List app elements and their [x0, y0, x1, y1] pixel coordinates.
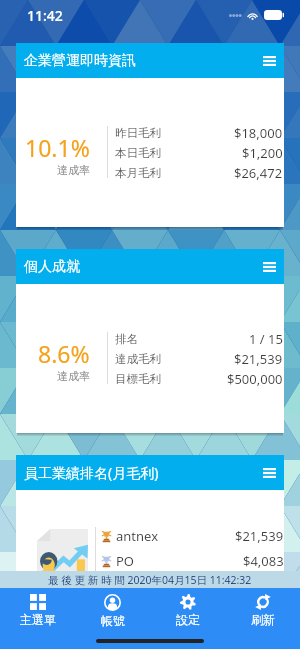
staticText: $1,200	[242, 144, 283, 162]
staticText: $4,083	[243, 552, 284, 570]
other: Settings	[180, 594, 196, 610]
other: Account	[104, 594, 121, 611]
staticText: 昨日毛利	[115, 126, 161, 140]
staticText: 設定	[176, 612, 200, 627]
button[interactable]: Refresh	[225, 588, 300, 632]
button[interactable]: Main menu	[0, 588, 75, 632]
staticText: antnex	[116, 527, 159, 545]
staticText: $26,472	[234, 164, 283, 182]
button[interactable]: Settings	[150, 588, 225, 632]
other: Main menu	[30, 594, 46, 610]
staticText: 10.1%	[25, 132, 90, 163]
staticText: $21,539	[235, 527, 284, 545]
other: Menu	[263, 56, 276, 66]
staticText: 帳號	[101, 613, 125, 628]
staticText: PO	[116, 552, 135, 570]
button[interactable]: 員工業績排名(月毛利)	[16, 455, 284, 490]
staticText: 達成率	[57, 369, 90, 383]
staticText: 達成率	[57, 163, 90, 177]
staticText: 11:42	[27, 6, 63, 25]
staticText: 達成毛利	[115, 352, 161, 366]
staticText: 本月毛利	[115, 166, 161, 180]
button[interactable]: 個人成就	[16, 249, 284, 284]
other: Menu	[263, 262, 276, 272]
staticText: 員工業績排名(月毛利)	[24, 463, 159, 482]
staticText: 主選單	[20, 612, 56, 627]
button[interactable]: Account	[75, 588, 150, 632]
staticText: 排名	[115, 332, 138, 346]
staticText: 目標毛利	[115, 372, 161, 386]
staticText: 刷新	[251, 612, 275, 627]
other: Refresh	[255, 594, 271, 610]
staticText: $21,539	[234, 350, 283, 368]
button[interactable]: 企業營運即時資訊	[16, 43, 284, 78]
staticText: 企業營運即時資訊	[24, 52, 136, 70]
staticText: 1 / 15	[249, 330, 283, 348]
staticText: $18,000	[234, 124, 283, 142]
staticText: 8.6%	[38, 338, 90, 369]
staticText: $500,000	[227, 370, 283, 388]
staticText: 最 後 更 新 時 間 2020年04月15日 11:42:32	[48, 573, 252, 587]
other: Menu	[263, 468, 276, 478]
staticText: 個人成就	[24, 258, 80, 276]
staticText: 本日毛利	[115, 146, 161, 160]
